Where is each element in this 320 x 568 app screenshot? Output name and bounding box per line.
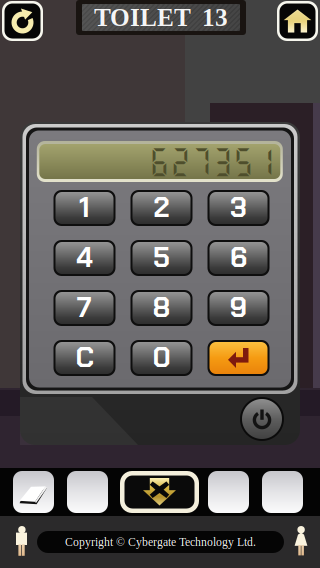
button[interactable]: 3: [207, 190, 269, 226]
staticText: 5: [153, 239, 170, 276]
button[interactable]: Restart: [2, 1, 43, 41]
button[interactable]: 9: [207, 290, 269, 326]
button[interactable]: 5: [130, 240, 192, 276]
button[interactable]: C: [53, 340, 115, 376]
button[interactable]: Enter: [207, 340, 269, 376]
staticText: 8: [152, 289, 170, 326]
staticText: 4: [76, 239, 92, 276]
staticText: 9: [229, 289, 247, 326]
staticText: 3: [230, 189, 247, 226]
button[interactable]: Selected item: [120, 471, 199, 513]
staticText: 1: [79, 189, 90, 226]
staticText: 2: [153, 189, 169, 226]
button[interactable]: Empty slot: [67, 471, 108, 513]
button[interactable]: 4: [53, 240, 115, 276]
button[interactable]: 8: [130, 290, 192, 326]
staticText: Copyright © Cybergate Technology Ltd.: [65, 535, 256, 548]
button[interactable]: Power: [240, 397, 284, 441]
button[interactable]: 7: [53, 290, 115, 326]
staticText: TOILET 13: [94, 3, 228, 32]
button[interactable]: Paper item: [13, 471, 54, 513]
button[interactable]: 2: [130, 190, 192, 226]
staticText: 627351: [149, 144, 275, 179]
button[interactable]: 1: [53, 190, 115, 226]
staticText: 6: [230, 239, 247, 276]
button[interactable]: 0: [130, 340, 192, 376]
button[interactable]: Empty slot: [208, 471, 249, 513]
staticText: 7: [77, 289, 92, 326]
button[interactable]: Home: [277, 1, 318, 41]
staticText: 0: [152, 339, 170, 376]
button[interactable]: 6: [207, 240, 269, 276]
staticText: C: [75, 339, 93, 376]
button[interactable]: Empty slot: [262, 471, 303, 513]
